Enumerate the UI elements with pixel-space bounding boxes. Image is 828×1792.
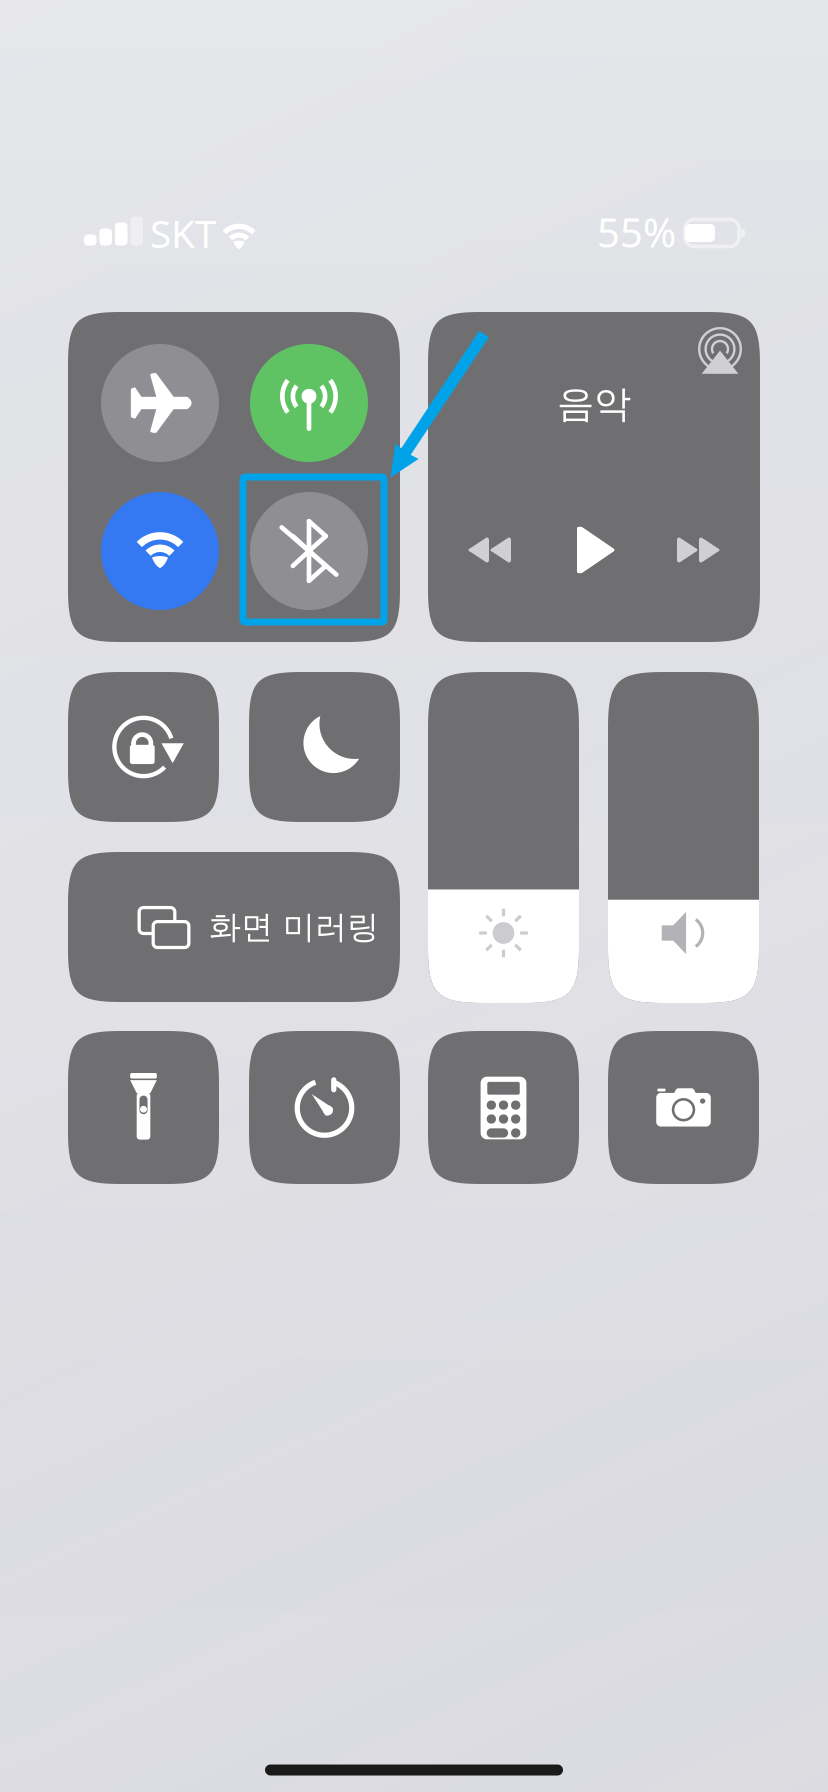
button[interactable]: Volume [608, 672, 759, 1003]
button[interactable]: 화면 미러링 [68, 852, 400, 1002]
staticText: 음악 [557, 381, 631, 427]
button[interactable] [68, 312, 400, 642]
staticText: SKT [150, 207, 216, 259]
button[interactable]: Cellular Data [0, 0, 828, 1792]
button[interactable]: Calculator [428, 1031, 579, 1184]
button[interactable]: Airplane Mode [0, 0, 828, 1792]
button[interactable]: Flashlight [68, 1031, 219, 1184]
button[interactable]: Rotation Lock [68, 672, 219, 822]
button[interactable]: 음악 [428, 312, 760, 642]
button[interactable]: Timer [249, 1031, 400, 1184]
button[interactable]: Bluetooth [0, 0, 828, 1792]
button[interactable]: Camera [608, 1031, 759, 1184]
button[interactable]: Do Not Disturb [249, 672, 400, 822]
button[interactable]: Wi-Fi [0, 0, 828, 1792]
staticText: 55% [597, 205, 676, 258]
button[interactable]: Brightness [428, 672, 579, 1003]
staticText: 화면 미러링 [209, 907, 379, 947]
